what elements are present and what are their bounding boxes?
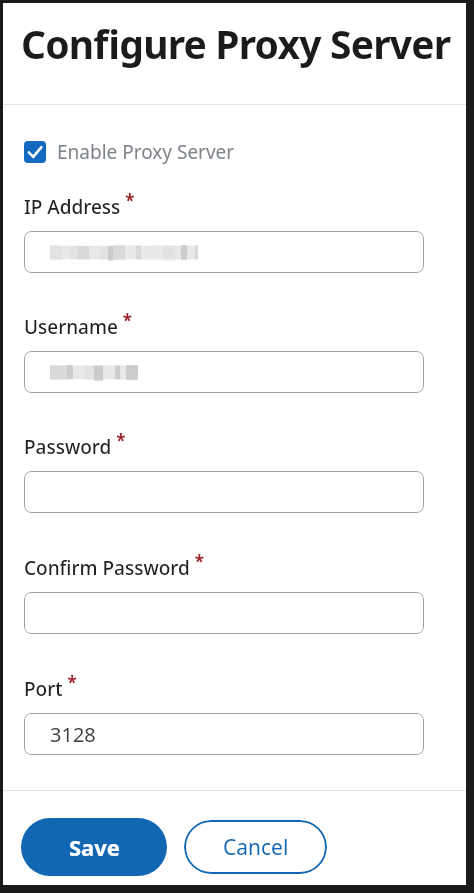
button[interactable]: Enable Proxy Server [24,139,235,165]
staticText: Configure Proxy Server [21,17,466,70]
staticText: 3128 [50,721,96,748]
button[interactable] [24,351,424,393]
button[interactable]: 3128 [24,713,424,755]
staticText: Save [69,832,120,862]
staticText: Cancel [223,833,289,862]
button[interactable]: Cancel [184,820,327,874]
staticText: IP Address * [24,189,135,220]
staticText: Enable Proxy Server [57,139,235,165]
button[interactable]: Save [21,818,167,876]
staticText: Username * [24,309,133,340]
button[interactable] [24,592,424,634]
staticText: Port * [24,671,77,702]
button[interactable] [24,231,424,273]
staticText: Password * [24,429,126,460]
button[interactable] [24,471,424,513]
staticText: Confirm Password * [24,550,204,581]
